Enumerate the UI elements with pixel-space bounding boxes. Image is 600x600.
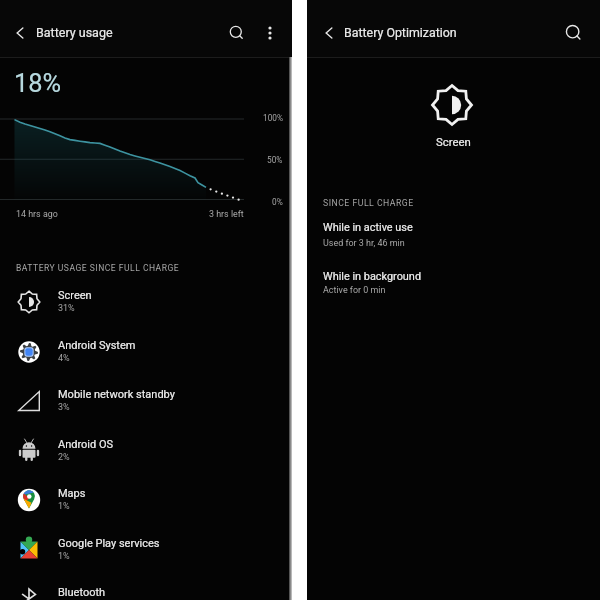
staticText: Android System bbox=[58, 339, 136, 352]
staticText: 50% bbox=[267, 155, 283, 165]
staticText: While in active use bbox=[323, 221, 413, 234]
button[interactable]: Search bbox=[556, 15, 592, 51]
button[interactable]: More options bbox=[254, 17, 286, 49]
staticText: Bluetooth bbox=[58, 586, 106, 599]
staticText: 1% bbox=[58, 551, 70, 562]
staticText: Screen bbox=[58, 289, 92, 302]
button[interactable]: Search bbox=[220, 16, 254, 50]
staticText: 18% bbox=[14, 68, 62, 98]
staticText: Battery usage bbox=[36, 25, 113, 40]
staticText: 3% bbox=[58, 402, 70, 413]
staticText: 2% bbox=[58, 452, 70, 463]
staticText: Active for 0 min bbox=[323, 285, 386, 295]
staticText: Battery Optimization bbox=[344, 25, 457, 40]
staticText: 100% bbox=[263, 113, 284, 123]
staticText: 14 hrs ago bbox=[16, 209, 58, 219]
staticText: 31% bbox=[58, 303, 75, 314]
staticText: 3 hrs left bbox=[209, 209, 244, 219]
button[interactable]: Android System bbox=[0, 332, 292, 381]
staticText: Maps bbox=[58, 487, 86, 500]
staticText: Google Play services bbox=[58, 537, 160, 550]
staticText: 0% bbox=[272, 197, 283, 207]
button[interactable]: Android OS bbox=[0, 431, 292, 480]
staticText: BATTERY USAGE SINCE FULL CHARGE bbox=[16, 263, 180, 273]
staticText: Used for 3 hr, 46 min bbox=[323, 238, 405, 248]
button[interactable]: Screen bbox=[0, 282, 292, 331]
button[interactable]: Back bbox=[309, 13, 349, 53]
staticText: While in background bbox=[323, 270, 422, 283]
staticText: Mobile network standby bbox=[58, 388, 175, 401]
staticText: 4% bbox=[58, 353, 70, 364]
button[interactable]: Maps bbox=[0, 480, 292, 529]
button[interactable]: Bluetooth bbox=[0, 579, 292, 600]
staticText: SINCE FULL CHARGE bbox=[323, 198, 414, 208]
button[interactable]: Back bbox=[0, 13, 40, 53]
staticText: Android OS bbox=[58, 438, 114, 451]
staticText: Screen bbox=[436, 135, 471, 148]
staticText: 1% bbox=[58, 501, 70, 512]
button[interactable]: Google Play services bbox=[0, 530, 292, 579]
button[interactable]: Mobile network standby bbox=[0, 381, 292, 430]
